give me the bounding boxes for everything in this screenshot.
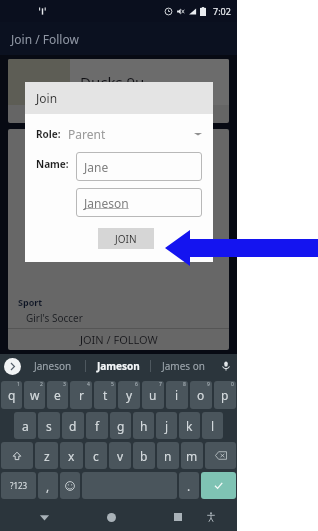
- staticText: m: [186, 448, 198, 464]
- staticText: .: [187, 478, 191, 494]
- button[interactable]: Voice input: [215, 354, 237, 378]
- button[interactable]: b: [133, 442, 155, 469]
- button[interactable]: y: [118, 381, 140, 409]
- staticText: x: [68, 448, 75, 464]
- staticText: u: [149, 387, 157, 403]
- button[interactable]: Shift: [1, 442, 33, 469]
- button[interactable]: Backspace: [205, 442, 236, 469]
- staticText: Join / Follow: [11, 31, 79, 47]
- staticText: w: [30, 387, 40, 403]
- staticText: 3: [63, 381, 66, 388]
- button[interactable]: Janeson: [76, 188, 202, 217]
- button[interactable]: a: [14, 412, 36, 439]
- button[interactable]: Emoji: [60, 472, 80, 499]
- staticText: 9: [207, 381, 210, 388]
- staticText: s: [46, 418, 52, 434]
- staticText: 6: [135, 381, 138, 388]
- staticText: b: [140, 448, 148, 464]
- staticText: Janeson: [34, 359, 72, 373]
- button[interactable]: JOIN: [98, 228, 154, 249]
- button[interactable]: g: [110, 412, 131, 439]
- button[interactable]: Jane: [76, 152, 202, 181]
- button[interactable]: More suggestions: [4, 358, 21, 375]
- button[interactable]: Back: [33, 506, 55, 528]
- staticText: Role:: [36, 127, 61, 141]
- button[interactable]: Recents: [167, 506, 189, 528]
- button[interactable]: f: [86, 412, 108, 439]
- staticText: ,: [46, 478, 50, 494]
- button[interactable]: Jameson: [86, 354, 150, 378]
- staticText: JOIN: [115, 232, 137, 246]
- staticText: d: [69, 418, 77, 434]
- button[interactable]: Role:: [36, 126, 202, 142]
- staticText: Sport: [18, 296, 43, 308]
- staticText: t: [103, 387, 108, 403]
- button[interactable]: c: [85, 442, 107, 469]
- staticText: Jameson: [97, 359, 140, 373]
- button[interactable]: James on: [151, 354, 215, 378]
- button[interactable]: e: [47, 381, 68, 409]
- button[interactable]: x: [60, 442, 83, 469]
- button[interactable]: u: [142, 381, 164, 409]
- button[interactable]: JOIN / FOLLOW: [8, 329, 229, 350]
- staticText: Girl's Soccer: [26, 311, 83, 325]
- staticText: 7: [159, 381, 162, 388]
- staticText: 2: [40, 381, 43, 388]
- staticText: 4: [87, 381, 90, 388]
- staticText: JOIN / FOLLOW: [80, 332, 158, 347]
- button[interactable]: Janeson: [21, 354, 85, 378]
- button[interactable]: k: [179, 412, 200, 439]
- button[interactable]: Enter: [201, 472, 236, 499]
- button[interactable]: h: [133, 412, 154, 439]
- staticText: e: [54, 387, 61, 403]
- staticText: 5: [111, 381, 114, 388]
- staticText: Ducks 9u: [80, 72, 145, 92]
- staticText: Name:: [36, 157, 69, 171]
- button[interactable]: ?123: [1, 472, 36, 499]
- staticText: Parent: [68, 126, 106, 142]
- staticText: n: [164, 448, 172, 464]
- button[interactable]: z: [35, 442, 58, 469]
- staticText: k: [186, 418, 193, 434]
- staticText: q: [8, 387, 16, 403]
- staticText: Janeson: [84, 195, 129, 211]
- button[interactable]: Accessibility: [200, 506, 222, 528]
- staticText: z: [44, 448, 50, 464]
- button[interactable]: j: [156, 412, 177, 439]
- staticText: 0: [231, 381, 234, 388]
- staticText: a: [22, 418, 29, 434]
- button[interactable]: d: [62, 412, 84, 439]
- staticText: i: [175, 387, 179, 403]
- button[interactable]: Home: [100, 506, 122, 528]
- button[interactable]: n: [157, 442, 179, 469]
- button[interactable]: p: [214, 381, 236, 409]
- staticText: Join: [36, 90, 58, 106]
- staticText: p: [221, 387, 229, 403]
- button[interactable]: m: [181, 442, 203, 469]
- button[interactable]: w: [24, 381, 45, 409]
- button[interactable]: s: [38, 412, 60, 439]
- staticText: o: [197, 387, 205, 403]
- button[interactable]: Ducks 9u: [8, 59, 229, 123]
- button[interactable]: .: [179, 472, 199, 499]
- staticText: c: [93, 448, 99, 464]
- staticText: j: [165, 418, 169, 434]
- staticText: g: [117, 418, 125, 434]
- staticText: h: [140, 418, 148, 434]
- staticText: r: [79, 387, 84, 403]
- staticText: l: [211, 418, 215, 434]
- staticText: 8: [183, 381, 186, 388]
- button[interactable]: ,: [38, 472, 58, 499]
- button[interactable]: q: [1, 381, 22, 409]
- button[interactable]: i: [166, 381, 188, 409]
- button[interactable]: Sport: [8, 129, 229, 350]
- button[interactable]: r: [70, 381, 92, 409]
- button[interactable]: v: [109, 442, 131, 469]
- staticText: f: [95, 418, 100, 434]
- button[interactable]: t: [94, 381, 116, 409]
- button[interactable]: l: [202, 412, 223, 439]
- button[interactable]: o: [190, 381, 212, 409]
- staticText: James on: [162, 359, 205, 373]
- staticText: y: [126, 387, 133, 403]
